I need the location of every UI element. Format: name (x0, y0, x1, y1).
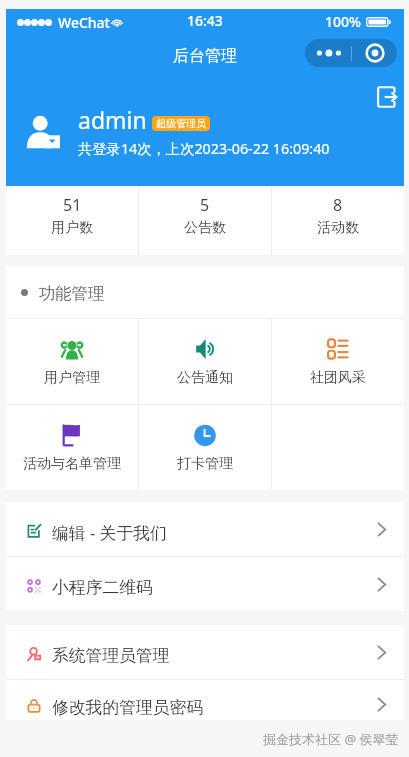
staticText: 5 (200, 194, 210, 216)
staticText: admin (78, 104, 147, 135)
button[interactable]: 编辑 - 关于我们 (6, 502, 404, 556)
staticText: 超级管理员 (156, 117, 206, 130)
staticText: 掘金技术社区 @ 侯翠莹 (263, 730, 399, 748)
staticText: 打卡管理 (177, 455, 233, 473)
staticText: 功能管理 (39, 283, 105, 304)
button[interactable]: 公告通知 (139, 319, 271, 404)
button[interactable]: 51 (6, 186, 138, 255)
button[interactable]: 打卡管理 (139, 405, 271, 490)
staticText: 8 (333, 194, 343, 216)
staticText: 用户管理 (44, 369, 100, 387)
staticText: 公告数 (184, 219, 226, 237)
button[interactable]: 小程序二维码 (6, 557, 404, 611)
button[interactable]: 修改我的管理员密码 (6, 684, 404, 720)
staticText: 系统管理员管理 (52, 645, 170, 666)
button[interactable]: 5 (139, 186, 271, 255)
button[interactable]: Mini program menu (305, 39, 397, 67)
staticText: 修改我的管理员密码 (52, 697, 204, 718)
staticText: WeChat (58, 13, 110, 32)
button[interactable]: 用户管理 (6, 319, 138, 404)
button[interactable]: 8 (272, 186, 404, 255)
staticText: 100% (325, 12, 361, 31)
staticText: 公告通知 (177, 369, 233, 387)
staticText: 活动与名单管理 (23, 455, 121, 473)
staticText: 编辑 - 关于我们 (52, 521, 167, 544)
staticText: 社团风采 (310, 369, 366, 387)
button[interactable]: 活动与名单管理 (6, 405, 138, 490)
staticText: 活动数 (317, 219, 359, 237)
button[interactable]: 系统管理员管理 (6, 625, 404, 679)
staticText: 51 (63, 194, 82, 216)
button[interactable]: 社团风采 (272, 319, 404, 404)
staticText: 用户数 (51, 219, 93, 237)
staticText: 小程序二维码 (52, 577, 153, 598)
staticText: 16:43 (187, 11, 223, 30)
staticText: 后台管理 (173, 46, 237, 66)
staticText: 共登录14次，上次2023-06-22 16:09:40 (78, 139, 330, 159)
button[interactable]: Logout (367, 78, 405, 116)
